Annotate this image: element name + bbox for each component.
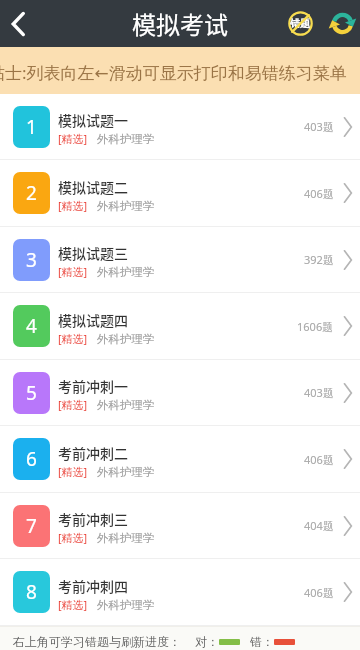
staticText: 403题 [304,119,334,134]
staticText: 外科护理学 [97,332,155,346]
button[interactable]: 8 [0,559,360,626]
staticText: 1 [26,114,37,140]
staticText: 错： [250,634,274,649]
staticText: 406题 [304,452,334,467]
staticText: 1606题 [297,319,334,334]
staticText: [精选] [58,597,88,612]
staticText: 7 [26,513,37,539]
staticText: [精选] [58,264,88,279]
staticText: 6 [26,446,37,472]
button[interactable]: 2 [0,160,360,227]
staticText: [精选] [58,397,88,412]
staticText: 模拟试题三 [58,243,128,263]
staticText: 考前冲刺一 [58,376,128,396]
staticText: 3 [26,247,37,273]
button[interactable]: 3 [0,227,360,293]
staticText: [精选] [58,530,88,545]
button[interactable]: 6 [0,426,360,493]
staticText: 考前冲刺二 [58,443,128,463]
staticText: 8 [26,579,37,605]
staticText: 外科护理学 [97,531,155,545]
staticText: 406题 [304,585,334,600]
staticText: 2 [26,180,37,206]
staticText: 考前冲刺三 [58,509,128,529]
staticText: 模拟试题一 [58,110,128,130]
staticText: 模拟试题四 [58,310,128,330]
staticText: 4 [26,313,37,339]
staticText: 模拟考试 [132,6,228,41]
button[interactable]: 7 [0,493,360,559]
staticText: 贴士:列表向左←滑动可显示打印和易错练习菜单， [0,61,348,84]
staticText: 外科护理学 [97,465,155,479]
staticText: 考前冲刺四 [58,576,128,596]
staticText: 外科护理学 [97,398,155,412]
staticText: 403题 [304,385,334,400]
staticText: [精选] [58,198,88,213]
button[interactable]: 1 [0,94,360,160]
button[interactable]: 错题 [276,0,324,47]
staticText: 5 [26,380,37,406]
staticText: 模拟试题二 [58,177,128,197]
staticText: 406题 [304,186,334,201]
staticText: 右上角可学习错题与刷新进度： [13,634,181,649]
staticText: 外科护理学 [97,265,155,279]
staticText: 对： [195,634,219,649]
staticText: 外科护理学 [97,132,155,146]
staticText: 392题 [304,252,334,267]
button[interactable]: 5 [0,360,360,426]
staticText: [精选] [58,331,88,346]
button[interactable]: 刷新 [324,0,360,47]
staticText: [精选] [58,464,88,479]
staticText: 外科护理学 [97,199,155,213]
staticText: 错题 [290,17,312,30]
button[interactable]: Back [0,0,40,47]
staticText: 404题 [304,518,334,533]
staticText: 外科护理学 [97,598,155,612]
staticText: [精选] [58,131,88,146]
button[interactable]: 4 [0,293,360,360]
